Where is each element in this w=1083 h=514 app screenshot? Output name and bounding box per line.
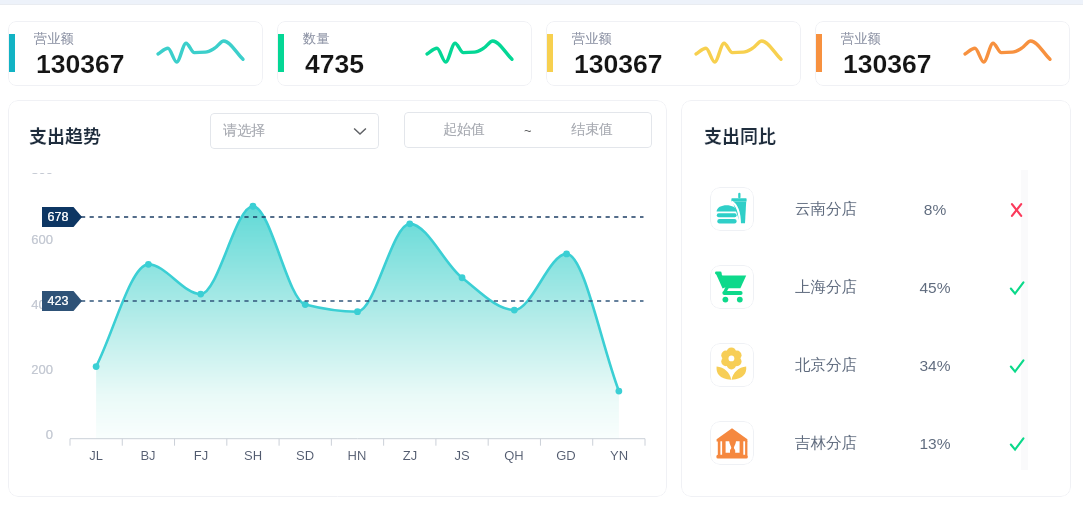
staticText: 4735 <box>305 49 364 79</box>
button[interactable]: 吉林分店 <box>700 417 1040 469</box>
button[interactable]: 营业额 <box>546 21 801 86</box>
staticText: 数量 <box>303 30 330 47</box>
staticText: 800 <box>8 173 53 177</box>
button[interactable]: 北京分店 <box>700 339 1040 391</box>
staticText: 678 <box>42 210 74 224</box>
staticText: 请选择 <box>223 122 265 140</box>
button[interactable]: 起始值 <box>404 112 652 148</box>
staticText: 130367 <box>36 49 125 79</box>
staticText: FJ <box>175 448 227 463</box>
staticText: 起始值 <box>404 121 524 139</box>
button[interactable]: 营业额 <box>815 21 1070 86</box>
button[interactable]: 云南分店 <box>700 183 1040 235</box>
button[interactable]: 请选择 <box>210 113 379 149</box>
staticText: 13% <box>905 435 965 452</box>
staticText: ~ <box>524 123 532 138</box>
staticText: 0 <box>8 427 53 442</box>
staticText: BJ <box>122 448 174 463</box>
staticText: 营业额 <box>34 30 74 47</box>
staticText: 130367 <box>843 49 932 79</box>
staticText: 营业额 <box>572 30 612 47</box>
staticText: ZJ <box>384 448 436 463</box>
other: 达标 <box>1010 437 1024 451</box>
staticText: 200 <box>8 362 53 377</box>
staticText: GD <box>540 448 592 463</box>
staticText: 吉林分店 <box>795 433 857 453</box>
staticText: QH <box>488 448 540 463</box>
staticText: 北京分店 <box>795 355 857 375</box>
button[interactable]: 数量 <box>277 21 532 86</box>
other: 未达标 <box>1010 203 1024 217</box>
staticText: 支出趋势 <box>29 122 101 148</box>
staticText: SD <box>279 448 331 463</box>
button[interactable]: 上海分店 <box>700 261 1040 313</box>
staticText: 8% <box>905 201 965 218</box>
staticText: 结束值 <box>532 121 652 139</box>
staticText: 400 <box>8 297 53 312</box>
staticText: 130367 <box>574 49 663 79</box>
staticText: 上海分店 <box>795 277 857 297</box>
staticText: 云南分店 <box>795 199 857 219</box>
button[interactable]: 营业额 <box>8 21 263 86</box>
staticText: 营业额 <box>841 30 881 47</box>
staticText: JS <box>436 448 488 463</box>
staticText: 34% <box>905 357 965 374</box>
staticText: YN <box>593 448 645 463</box>
staticText: 600 <box>8 232 53 247</box>
staticText: SH <box>227 448 279 463</box>
staticText: 45% <box>905 279 965 296</box>
staticText: 423 <box>42 294 74 308</box>
staticText: 支出同比 <box>704 122 776 148</box>
staticText: JL <box>70 448 122 463</box>
other: 达标 <box>1010 359 1024 373</box>
other: 达标 <box>1010 281 1024 295</box>
staticText: HN <box>331 448 383 463</box>
